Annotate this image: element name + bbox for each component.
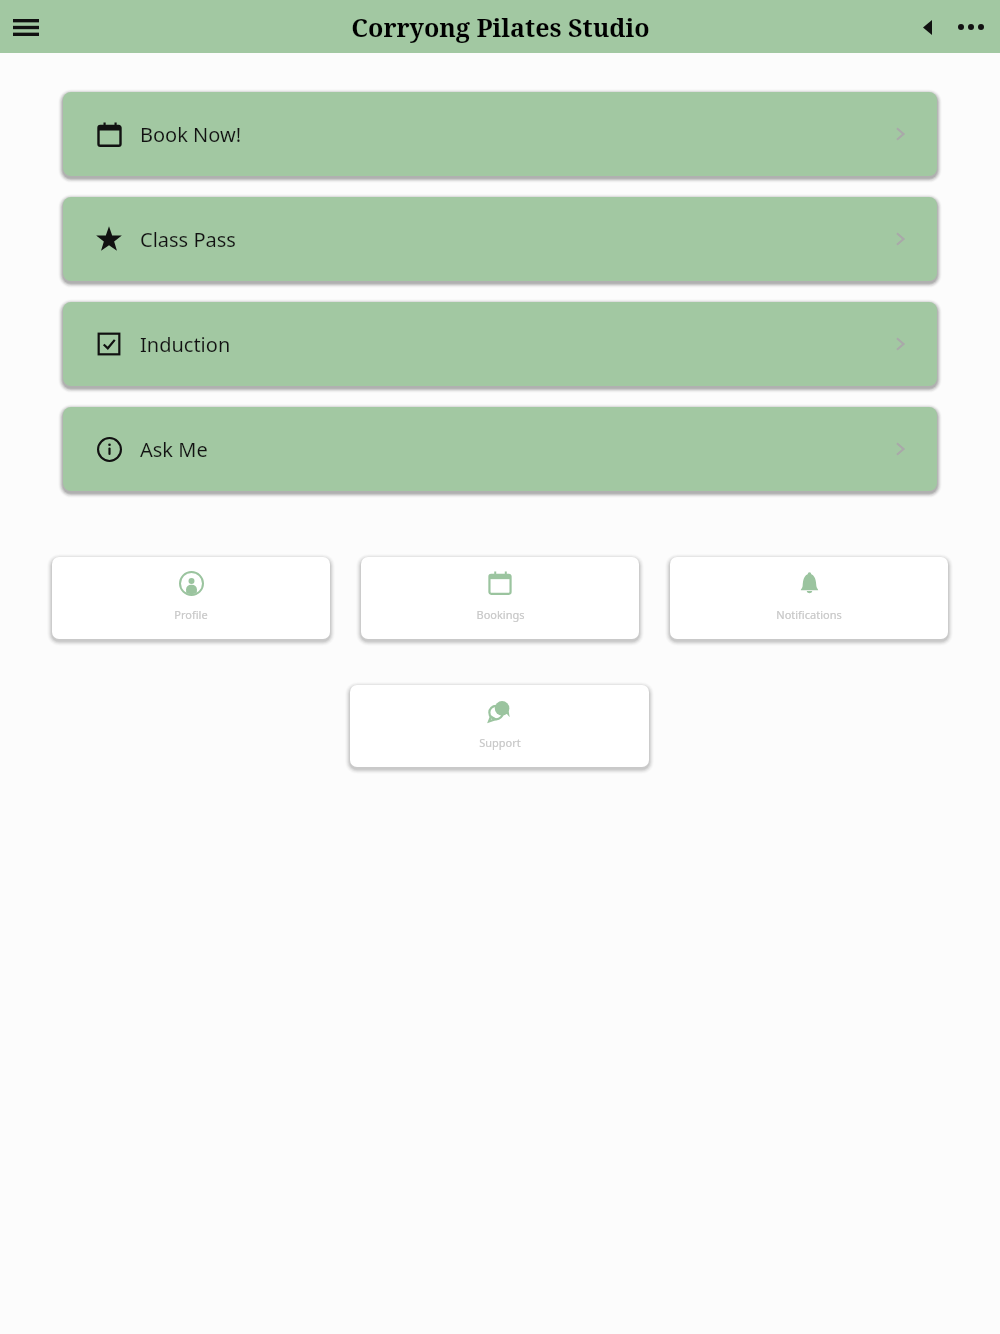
button[interactable]: Class Pass: [63, 197, 937, 281]
staticText: Induction: [140, 331, 231, 358]
staticText: Bookings: [476, 607, 525, 622]
button[interactable]: Back: [912, 12, 942, 42]
button[interactable]: Ask Me: [63, 407, 937, 491]
staticText: Corryong Pilates Studio: [351, 10, 650, 44]
staticText: Class Pass: [140, 226, 236, 253]
button[interactable]: More options: [954, 10, 988, 44]
button[interactable]: Notifications: [670, 557, 948, 639]
staticText: Profile: [174, 607, 208, 622]
button[interactable]: Profile: [52, 557, 330, 639]
button[interactable]: Book Now!: [63, 92, 937, 176]
button[interactable]: Bookings: [361, 557, 639, 639]
staticText: Support: [479, 735, 521, 750]
button[interactable]: Induction: [63, 302, 937, 386]
button[interactable]: Open navigation menu: [4, 5, 48, 49]
button[interactable]: Support: [350, 685, 649, 767]
staticText: Ask Me: [140, 436, 208, 463]
staticText: Book Now!: [140, 121, 242, 148]
staticText: Notifications: [776, 607, 842, 622]
